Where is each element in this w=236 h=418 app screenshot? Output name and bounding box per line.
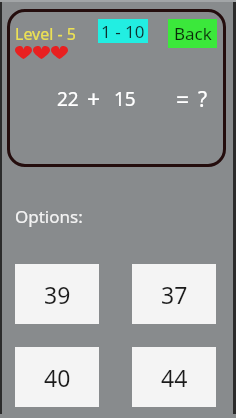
staticText: 40 <box>44 362 71 393</box>
other: 3 lives remaining <box>15 46 68 59</box>
button[interactable]: 40 <box>15 347 99 407</box>
staticText: 1 - 10 <box>101 20 145 43</box>
staticText: = <box>176 83 190 114</box>
button[interactable]: Back <box>168 19 217 48</box>
staticText: Back <box>174 22 212 45</box>
staticText: 39 <box>44 279 71 310</box>
staticText: Level - 5 <box>15 23 76 45</box>
staticText: ? <box>198 85 208 114</box>
staticText: 22 <box>57 86 79 112</box>
button[interactable]: 44 <box>132 347 216 407</box>
staticText: 15 <box>114 86 136 112</box>
staticText: + <box>87 83 101 114</box>
button[interactable]: 37 <box>132 264 216 324</box>
staticText: Options: <box>15 205 83 228</box>
staticText: 44 <box>161 362 188 393</box>
button[interactable]: 1 - 10 <box>98 19 148 43</box>
staticText: 37 <box>161 279 188 310</box>
button[interactable]: 39 <box>15 264 99 324</box>
